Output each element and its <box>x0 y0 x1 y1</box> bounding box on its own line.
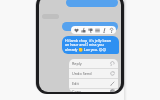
button[interactable]: Reaction 4 <box>94 27 100 33</box>
button[interactable]: Reaction 6 <box>108 27 114 33</box>
staticText: Edit <box>72 81 110 86</box>
button[interactable]: Undo Send <box>69 69 118 78</box>
button[interactable]: Reply <box>69 59 118 68</box>
button[interactable]: Reaction 3 <box>87 27 93 33</box>
button[interactable]: Reaction 2 <box>80 27 86 33</box>
staticText: Undo Send <box>72 71 110 76</box>
button[interactable]: Copy <box>69 89 118 92</box>
button[interactable]: Edit <box>69 79 118 88</box>
button[interactable]: Tapback reactions <box>71 26 116 34</box>
button[interactable]: Reaction 5 <box>101 27 107 33</box>
staticText: Copy <box>72 89 110 92</box>
staticText: Reply <box>72 61 110 66</box>
button[interactable]: Hi lamb chop, it's jelly bean an hour an… <box>62 36 119 54</box>
staticText: Hi lamb chop, it's jelly bean an hour an… <box>65 38 116 52</box>
button[interactable]: Reaction 1 <box>73 27 79 33</box>
